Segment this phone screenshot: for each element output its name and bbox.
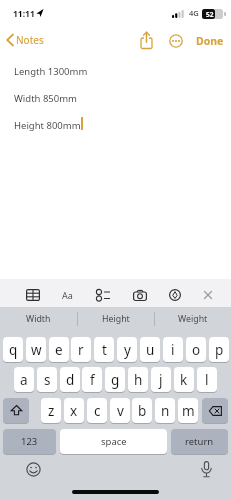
staticText: v — [117, 402, 124, 420]
staticText: g — [111, 371, 120, 389]
button[interactable]: e — [49, 337, 69, 362]
staticText: s — [44, 371, 51, 389]
button[interactable]: j — [151, 367, 171, 392]
button[interactable]: n — [155, 398, 175, 423]
staticText: y — [124, 341, 131, 359]
staticText: Weight — [178, 313, 208, 325]
staticText: Width 850mm — [14, 92, 77, 105]
staticText: o — [192, 341, 201, 359]
button[interactable]: r — [71, 337, 91, 362]
staticText: Notes — [16, 33, 44, 47]
button[interactable]: c — [87, 398, 107, 423]
button[interactable]: b — [132, 398, 152, 423]
button[interactable]: y — [117, 337, 137, 362]
button[interactable] — [138, 31, 155, 50]
button[interactable]: Done — [196, 34, 224, 48]
button[interactable]: z — [41, 398, 61, 423]
button[interactable] — [96, 289, 110, 301]
button[interactable]: x — [64, 398, 84, 423]
staticText: Width — [26, 313, 51, 325]
button[interactable]: i — [163, 337, 183, 362]
staticText: j — [159, 371, 163, 389]
button[interactable]: t — [94, 337, 114, 362]
button[interactable] — [169, 289, 181, 301]
button[interactable]: u — [140, 337, 160, 362]
button[interactable]: p — [209, 337, 229, 362]
button[interactable] — [133, 290, 147, 301]
button[interactable]: m — [178, 398, 198, 423]
staticText: f — [90, 371, 95, 389]
staticText: u — [146, 341, 155, 359]
staticText: n — [161, 402, 170, 420]
staticText: q — [9, 341, 18, 359]
button[interactable]: Weight — [154, 307, 231, 331]
button[interactable]: w — [26, 337, 46, 362]
button[interactable] — [200, 461, 213, 478]
button[interactable]: q — [3, 337, 23, 362]
staticText: 4G — [189, 8, 199, 18]
staticText: Height — [102, 313, 130, 325]
staticText: 52 — [206, 10, 214, 19]
button[interactable] — [203, 290, 213, 300]
staticText: Length 1300mm — [14, 65, 88, 78]
staticText: b — [138, 402, 147, 420]
button[interactable]: 123 — [3, 429, 56, 454]
button[interactable] — [202, 398, 228, 423]
button[interactable]: v — [110, 398, 130, 423]
staticText: z — [48, 402, 55, 420]
staticText: l — [205, 371, 209, 389]
button[interactable]: Height — [77, 307, 154, 331]
button[interactable]: f — [82, 367, 102, 392]
staticText: d — [66, 371, 75, 389]
button[interactable]: Width — [0, 307, 77, 331]
staticText: return — [185, 435, 214, 448]
button[interactable]: o — [186, 337, 206, 362]
staticText: r — [78, 341, 84, 359]
button[interactable] — [26, 289, 40, 301]
staticText: c — [94, 402, 101, 420]
button[interactable]: h — [128, 367, 148, 392]
button[interactable]: Aa — [62, 289, 73, 301]
button[interactable] — [169, 34, 183, 48]
button[interactable]: space — [60, 429, 167, 454]
button[interactable]: g — [105, 367, 125, 392]
staticText: t — [102, 341, 107, 359]
button[interactable]: a — [14, 367, 34, 392]
button[interactable] — [3, 398, 29, 423]
staticText: i — [171, 341, 175, 359]
staticText: space — [101, 435, 127, 448]
staticText: x — [70, 402, 78, 420]
button[interactable]: d — [60, 367, 80, 392]
staticText: w — [31, 341, 42, 359]
button[interactable]: k — [174, 367, 194, 392]
staticText: 123 — [21, 435, 38, 448]
button[interactable]: Notes — [4, 30, 64, 50]
staticText: m — [182, 402, 195, 420]
staticText: Height 800mm — [14, 119, 81, 132]
staticText: 11:11 — [13, 8, 35, 20]
staticText: h — [134, 371, 143, 389]
button[interactable]: s — [37, 367, 57, 392]
staticText: p — [215, 341, 224, 359]
button[interactable]: return — [171, 429, 228, 454]
staticText: a — [20, 371, 28, 389]
button[interactable]: l — [197, 367, 217, 392]
staticText: k — [180, 371, 188, 389]
button[interactable] — [26, 462, 41, 477]
staticText: e — [55, 341, 63, 359]
